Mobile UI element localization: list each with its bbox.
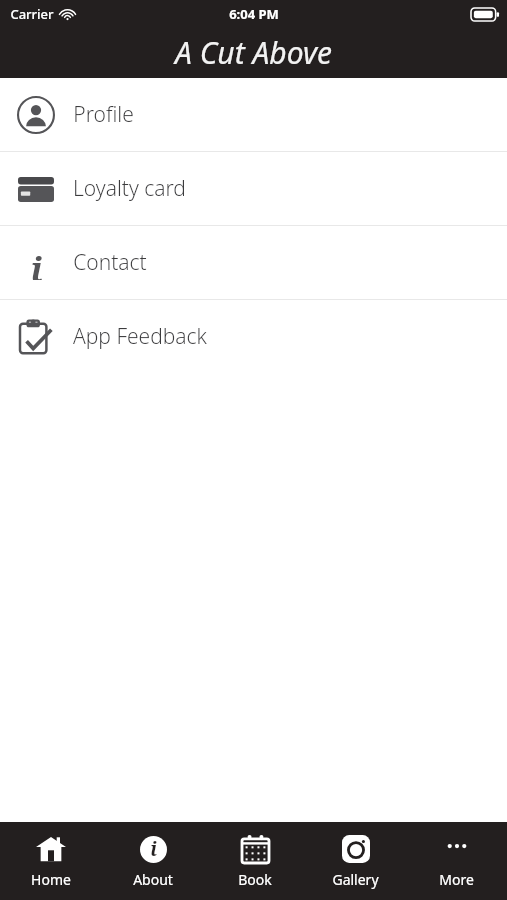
other: Home <box>36 836 66 862</box>
other: Loyalty card <box>18 177 54 202</box>
staticText: Home <box>31 870 71 889</box>
button[interactable]: About <box>102 822 204 900</box>
other: About <box>140 836 167 863</box>
button[interactable]: Profile <box>0 78 507 151</box>
staticText: App Feedback <box>73 322 207 351</box>
button[interactable]: Loyalty card <box>0 152 507 225</box>
button[interactable]: More <box>406 822 507 900</box>
staticText: Profile <box>73 100 134 129</box>
button[interactable]: Home <box>0 822 102 900</box>
staticText: More <box>439 870 474 889</box>
other: Gallery <box>342 835 370 863</box>
other: Book <box>242 835 269 863</box>
staticText: i <box>150 836 157 862</box>
staticText: i <box>30 246 43 280</box>
staticText: Contact <box>73 248 147 277</box>
other: More <box>444 837 470 861</box>
staticText: Book <box>238 870 272 889</box>
other: App Feedback <box>20 319 53 355</box>
staticText: Carrier <box>10 5 54 23</box>
staticText: About <box>133 870 173 889</box>
button[interactable]: Book <box>204 822 305 900</box>
staticText: A Cut Above <box>175 32 332 73</box>
button[interactable]: Gallery <box>305 822 406 900</box>
staticText: 6:04 PM <box>229 5 279 23</box>
button[interactable]: Contact <box>0 226 507 299</box>
staticText: Loyalty card <box>73 174 186 203</box>
other: Profile <box>17 96 55 134</box>
button[interactable]: App Feedback <box>0 300 507 373</box>
staticText: Gallery <box>332 870 379 889</box>
other: Contact <box>19 246 53 280</box>
